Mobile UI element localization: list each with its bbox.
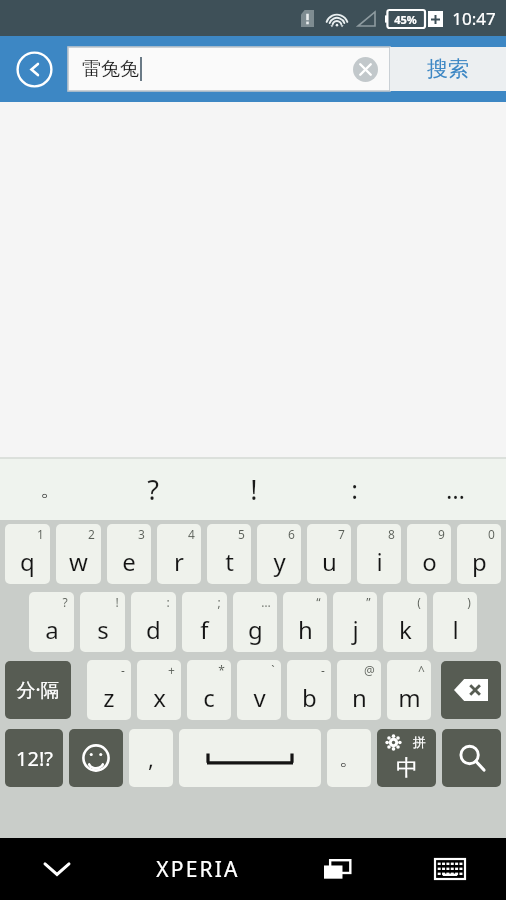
staticText: + bbox=[168, 662, 175, 678]
button[interactable]: 雷兔兔 bbox=[68, 47, 390, 91]
button[interactable]: ) bbox=[433, 592, 477, 652]
staticText: ) bbox=[467, 594, 471, 610]
staticText: 9 bbox=[438, 526, 445, 542]
staticText: XPERIA bbox=[156, 855, 240, 884]
staticText: 0 bbox=[488, 526, 495, 542]
staticText: v bbox=[253, 681, 266, 714]
staticText: ? bbox=[147, 471, 159, 508]
staticText: ; bbox=[217, 594, 221, 610]
button[interactable]: 4 bbox=[157, 524, 201, 584]
staticText: z bbox=[103, 681, 115, 714]
button[interactable]: 5 bbox=[207, 524, 251, 584]
button[interactable]: Hide keyboard bbox=[0, 838, 113, 900]
button[interactable]: 7 bbox=[307, 524, 351, 584]
staticText: s bbox=[97, 613, 109, 646]
staticText: ” bbox=[366, 594, 371, 610]
button[interactable]: 。 bbox=[327, 729, 371, 787]
staticText: … bbox=[446, 473, 465, 506]
staticText: 7 bbox=[338, 526, 345, 542]
staticText: 分·隔 bbox=[16, 677, 60, 703]
staticText: k bbox=[399, 613, 412, 646]
button[interactable]: Input language bbox=[377, 729, 436, 787]
staticText: , bbox=[148, 743, 154, 773]
button[interactable]: ( bbox=[383, 592, 427, 652]
staticText: 45% bbox=[394, 12, 417, 27]
button[interactable]: : bbox=[131, 592, 176, 652]
staticText: 拼 bbox=[413, 734, 426, 750]
button[interactable]: ^ bbox=[387, 660, 431, 720]
button[interactable]: Switch keyboard bbox=[394, 838, 506, 900]
button[interactable]: - bbox=[287, 660, 331, 720]
button[interactable]: Back bbox=[0, 36, 68, 102]
staticText: h bbox=[298, 613, 313, 646]
button[interactable]: + bbox=[137, 660, 181, 720]
staticText: 雷兔兔 bbox=[82, 57, 139, 81]
button[interactable]: 9 bbox=[407, 524, 451, 584]
button[interactable]: 1 bbox=[5, 524, 50, 584]
staticText: 1 bbox=[37, 526, 44, 542]
staticText: x bbox=[153, 681, 166, 714]
staticText: 8 bbox=[388, 526, 395, 542]
button[interactable]: 12!? bbox=[5, 729, 63, 787]
button[interactable]: ? bbox=[102, 458, 203, 520]
staticText: 3 bbox=[138, 526, 145, 542]
button[interactable]: 分·隔 bbox=[5, 661, 71, 719]
button[interactable]: Recent apps bbox=[282, 838, 394, 900]
staticText: 搜索 bbox=[427, 56, 469, 82]
staticText: a bbox=[45, 613, 59, 646]
button[interactable]: … bbox=[405, 458, 506, 520]
staticText: ? bbox=[62, 594, 68, 610]
button[interactable]: “ bbox=[283, 592, 327, 652]
button[interactable]: 6 bbox=[257, 524, 301, 584]
staticText: f bbox=[200, 613, 209, 646]
button[interactable]: 8 bbox=[357, 524, 401, 584]
button[interactable]: Search bbox=[442, 729, 501, 787]
button[interactable]: : bbox=[304, 458, 405, 520]
staticText: d bbox=[146, 613, 161, 646]
button[interactable]: ! bbox=[80, 592, 125, 652]
staticText: u bbox=[322, 545, 337, 578]
staticText: i bbox=[376, 545, 383, 578]
staticText: n bbox=[352, 681, 367, 714]
staticText: m bbox=[398, 681, 421, 714]
button[interactable]: ? bbox=[29, 592, 74, 652]
button[interactable]: ; bbox=[182, 592, 227, 652]
staticText: @ bbox=[364, 662, 375, 678]
button[interactable]: Clear text bbox=[348, 52, 382, 86]
button[interactable]: Space bbox=[179, 729, 321, 787]
staticText: e bbox=[122, 545, 136, 578]
staticText: - bbox=[121, 662, 125, 678]
button[interactable]: 3 bbox=[107, 524, 151, 584]
button[interactable]: … bbox=[233, 592, 277, 652]
staticText: 10:47 bbox=[452, 7, 496, 30]
button[interactable]: @ bbox=[337, 660, 381, 720]
button[interactable]: ” bbox=[333, 592, 377, 652]
staticText: b bbox=[302, 681, 317, 714]
staticText: ! bbox=[115, 594, 119, 610]
button[interactable]: * bbox=[187, 660, 231, 720]
staticText: “ bbox=[316, 594, 321, 610]
button[interactable]: 搜索 bbox=[390, 47, 506, 91]
button[interactable]: ! bbox=[203, 458, 304, 520]
staticText: p bbox=[472, 545, 487, 578]
staticText: 。 bbox=[339, 746, 359, 771]
staticText: 4 bbox=[188, 526, 195, 542]
staticText: ! bbox=[250, 471, 258, 508]
button[interactable]: 。 bbox=[0, 458, 102, 520]
button[interactable]: ` bbox=[237, 660, 281, 720]
staticText: 5 bbox=[238, 526, 245, 542]
staticText: ( bbox=[417, 594, 421, 610]
button[interactable]: Emoji bbox=[69, 729, 123, 787]
staticText: ` bbox=[271, 662, 275, 678]
button[interactable]: 2 bbox=[56, 524, 101, 584]
staticText: j bbox=[352, 613, 359, 646]
button[interactable]: 0 bbox=[457, 524, 501, 584]
staticText: t bbox=[225, 545, 234, 578]
staticText: l bbox=[452, 613, 459, 646]
button[interactable]: , bbox=[129, 729, 173, 787]
staticText: w bbox=[69, 545, 88, 578]
button[interactable]: - bbox=[87, 660, 131, 720]
staticText: … bbox=[261, 594, 271, 610]
button[interactable]: Backspace bbox=[441, 661, 501, 719]
staticText: 。 bbox=[40, 475, 62, 503]
